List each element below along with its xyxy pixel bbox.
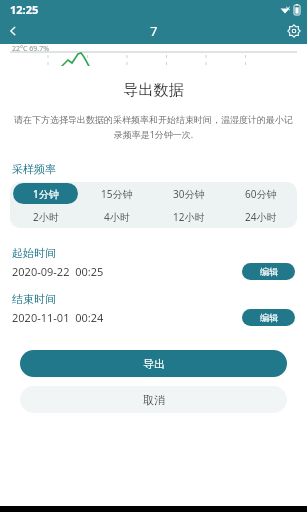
staticText: 请在下方选择导出数据的采样频率和开始结束时间，温湿度计的最小记录频率是1分钟一次… [12, 114, 295, 140]
staticText: 编辑 [260, 266, 278, 277]
button[interactable]: 15分钟 [84, 183, 150, 204]
staticText: 22°C 69.7% [12, 44, 49, 54]
staticText: 起始时间 [12, 246, 56, 260]
staticText: 编辑 [260, 312, 278, 323]
staticText: 4小时 [104, 210, 130, 224]
button[interactable]: 12小时 [156, 206, 222, 227]
staticText: 2小时 [33, 210, 59, 224]
button[interactable]: 编辑 [242, 263, 295, 280]
button[interactable]: 2小时 [13, 206, 78, 227]
staticText: 导出 [143, 357, 165, 371]
button[interactable]: Back [0, 18, 26, 44]
staticText: 15分钟 [101, 187, 133, 201]
staticText: 12小时 [173, 210, 205, 224]
button[interactable]: 24小时 [228, 206, 294, 227]
button[interactable]: 1分钟 [13, 183, 78, 204]
staticText: 12:25 [10, 2, 39, 17]
staticText: 7 [150, 22, 158, 40]
staticText: 导出数据 [0, 81, 307, 100]
button[interactable]: 4小时 [84, 206, 150, 227]
button[interactable]: 导出 [20, 350, 287, 377]
staticText: 2020-09-22 00:25 [12, 264, 104, 279]
staticText: 2020-11-01 00:24 [12, 310, 104, 325]
staticText: 取消 [143, 393, 165, 407]
staticText: 60分钟 [245, 187, 277, 201]
button[interactable]: 取消 [20, 386, 287, 413]
button[interactable]: 60分钟 [228, 183, 294, 204]
staticText: 24小时 [245, 210, 277, 224]
button[interactable]: 编辑 [242, 309, 295, 326]
button[interactable]: 30分钟 [156, 183, 222, 204]
staticText: 结束时间 [12, 292, 56, 306]
button[interactable]: Settings [281, 18, 307, 44]
staticText: 1分钟 [33, 187, 59, 201]
staticText: 采样频率 [12, 162, 56, 176]
staticText: 30分钟 [173, 187, 205, 201]
